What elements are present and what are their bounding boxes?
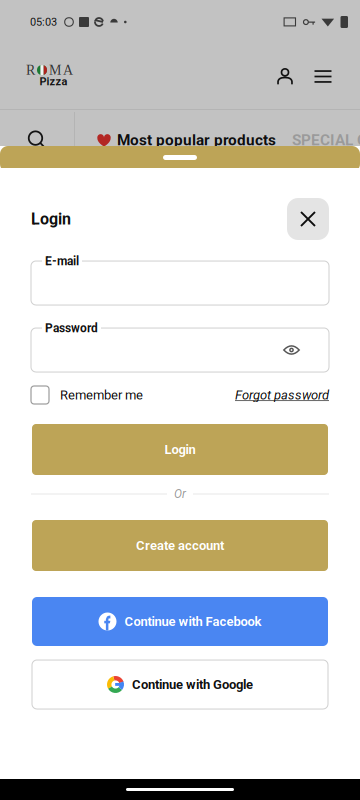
button[interactable]: Create account	[32, 520, 328, 571]
staticText: R	[26, 62, 35, 78]
staticText: A	[63, 62, 73, 78]
staticText: 05:03	[30, 16, 57, 28]
button[interactable]: Login	[32, 424, 328, 475]
button[interactable]: Forgot password	[235, 387, 329, 403]
staticText: Remember me	[60, 387, 143, 403]
button[interactable]: Menu	[310, 63, 336, 89]
staticText: E-mail	[45, 254, 79, 268]
staticText: Continue with Facebook	[124, 614, 261, 629]
button[interactable]: Search	[0, 112, 74, 168]
staticText: Continue with Google	[132, 677, 253, 692]
button[interactable]: Close	[287, 198, 329, 240]
staticText: Password	[45, 321, 98, 335]
staticText: M	[49, 62, 61, 78]
staticText: Login	[31, 210, 71, 228]
button[interactable]: Continue with Facebook	[32, 597, 328, 646]
staticText: Or	[174, 487, 186, 501]
button[interactable]: Account	[272, 63, 298, 89]
staticText: Most popular products	[117, 131, 276, 149]
staticText: Login	[164, 442, 195, 457]
staticText: Forgot password	[235, 387, 329, 403]
staticText: Pizza	[39, 75, 67, 88]
button[interactable]: Continue with Google	[32, 660, 328, 709]
staticText: Create account	[136, 538, 224, 553]
button[interactable]: Remember me	[31, 386, 143, 404]
staticText: SPECIAL OFFERS	[292, 131, 360, 149]
